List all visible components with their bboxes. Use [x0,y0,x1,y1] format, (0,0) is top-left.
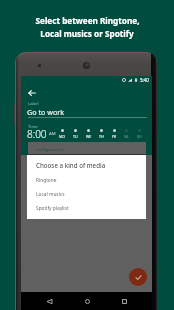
staticText: Ringtone [36,177,57,184]
staticText: SU [137,134,142,139]
staticText: MO [59,134,66,139]
staticText: 5:40 [140,77,149,83]
button[interactable]: Local musics [27,187,146,201]
button[interactable]: Home [78,292,96,310]
staticText: WE [86,134,92,139]
staticText: AM [49,131,56,137]
button[interactable]: FR [109,129,120,139]
button[interactable]: Back [40,292,58,310]
button[interactable]: SU [134,129,145,139]
staticText: 8:00 [27,127,47,141]
button[interactable]: WE [83,129,94,139]
staticText: FR [112,134,117,139]
staticText: TU [73,134,78,139]
button[interactable]: Recent apps [115,292,133,310]
staticText: TH [99,134,104,139]
button[interactable]: SA [121,129,132,139]
button[interactable]: Save alarm [129,268,147,286]
button[interactable]: Ringtone [27,173,146,187]
staticText: Select between Ringtone, [35,15,140,26]
staticText: Go to work [27,107,65,117]
staticText: Label [28,101,39,107]
staticText: Configuration [35,146,64,152]
staticText: Local musics [36,191,65,198]
staticText: Spotify playlist [36,205,69,212]
button[interactable]: TU [70,129,81,139]
button[interactable]: Navigate up [25,86,39,100]
staticText: SA [124,134,129,139]
button[interactable]: TH [96,129,107,139]
staticText: Choose a kind of media [36,161,106,169]
button[interactable]: MO [57,129,68,139]
staticText: Time [28,124,38,130]
button[interactable]: Spotify playlist [27,201,146,215]
staticText: Local musics or Spotify [40,28,134,39]
